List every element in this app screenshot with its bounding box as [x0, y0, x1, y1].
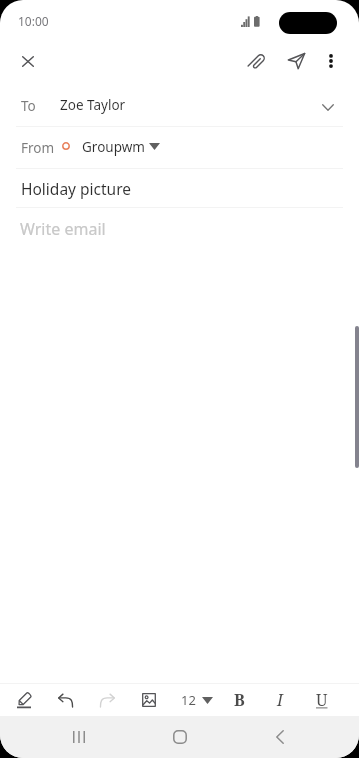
button[interactable]: To [0, 86, 359, 126]
staticText: 10:00 [18, 13, 49, 29]
staticText: U [316, 689, 328, 711]
staticText: From [21, 139, 55, 157]
button[interactable]: Write email [0, 208, 359, 248]
staticText: Write email [20, 218, 106, 240]
button[interactable]: Show more recipient fields [311, 91, 345, 121]
button[interactable]: Undo [49, 684, 81, 716]
button[interactable]: Holiday picture [0, 169, 359, 207]
button[interactable]: Send [278, 43, 314, 79]
button[interactable]: B [223, 684, 255, 716]
staticText: 12 [181, 691, 196, 709]
button[interactable]: U [306, 684, 338, 716]
button[interactable]: Close [10, 43, 46, 79]
button[interactable]: Highlight [8, 684, 40, 716]
button[interactable]: 12 [177, 684, 217, 716]
staticText: Groupwm [82, 138, 145, 156]
staticText: B [234, 689, 245, 711]
button[interactable]: Attach file [240, 43, 276, 79]
staticText: Holiday picture [21, 178, 132, 199]
button[interactable]: I [264, 684, 296, 716]
button[interactable]: From [0, 127, 359, 168]
button[interactable]: Home [160, 717, 200, 757]
button[interactable]: Recent apps [59, 717, 99, 757]
button[interactable]: More options [313, 43, 349, 79]
staticText: I [277, 689, 283, 711]
staticText: To [21, 97, 36, 115]
button[interactable]: Back [260, 717, 300, 757]
staticText: Zoe Taylor [60, 96, 126, 114]
button[interactable]: Insert image [133, 684, 165, 716]
button[interactable]: Redo [91, 684, 123, 716]
